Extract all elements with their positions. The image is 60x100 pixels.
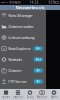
staticText: Mehr xyxy=(50,95,57,99)
staticText: Aus xyxy=(36,58,41,61)
staticText: Tools xyxy=(26,95,33,99)
staticText: Nettools xyxy=(8,57,22,62)
staticText: 14:26 xyxy=(30,1,39,4)
button[interactable]: FTP-Server xyxy=(0,76,46,87)
button[interactable]: Server xyxy=(0,89,12,100)
button[interactable]: Dateien xyxy=(12,89,24,100)
staticText: FTP-Server xyxy=(8,79,27,84)
button[interactable]: Nettools xyxy=(0,54,46,65)
staticText: Dateien xyxy=(12,95,23,99)
button[interactable]: Tools xyxy=(24,89,36,100)
staticText: Netzwerktools xyxy=(15,5,44,10)
staticText: Dateiverwalter xyxy=(8,24,34,29)
staticText: Root-Explorer xyxy=(8,46,31,51)
staticText: 82% xyxy=(49,1,55,4)
button[interactable]: Linkverwaltung xyxy=(0,32,46,43)
staticText: Telekom xyxy=(8,1,20,4)
staticText: An xyxy=(36,47,40,50)
staticText: Dateien xyxy=(8,68,21,73)
button[interactable]: Dateiverwalter xyxy=(0,21,46,32)
staticText: Server xyxy=(2,95,10,99)
button[interactable]: Dateien xyxy=(0,65,46,76)
staticText: Linkverwaltung xyxy=(8,35,34,40)
button[interactable]: Root-Explorer xyxy=(0,43,46,54)
staticText: Medien xyxy=(36,95,47,99)
staticText: An xyxy=(36,80,40,83)
staticText: An xyxy=(36,69,40,72)
staticText: Netz-Manager xyxy=(8,13,33,18)
button[interactable]: Medien xyxy=(36,89,48,100)
button[interactable]: Netz-Manager xyxy=(0,10,46,21)
button[interactable]: Mehr xyxy=(48,89,60,100)
